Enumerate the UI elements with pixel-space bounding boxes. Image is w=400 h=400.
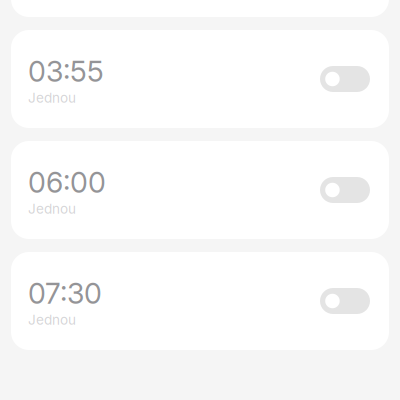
button[interactable]: 07:30 (11, 252, 389, 350)
button[interactable]: 06:00 (11, 141, 389, 239)
staticText: 07:30 (28, 276, 102, 310)
staticText: Jednou (28, 200, 76, 217)
staticText: 06:00 (28, 165, 106, 199)
staticText: Jednou (28, 311, 76, 328)
staticText: 03:55 (28, 54, 104, 88)
staticText: Jednou (28, 89, 76, 106)
button[interactable]: 03:55 (11, 30, 389, 128)
